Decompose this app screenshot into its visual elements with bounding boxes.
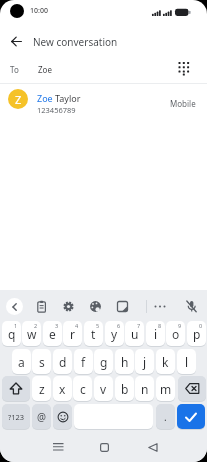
button[interactable]: d [53,349,72,374]
staticText: d [59,354,67,370]
staticText: New conversation [33,35,118,49]
button[interactable]: c [73,376,92,401]
button[interactable]: a [12,349,31,374]
staticText: 6 [117,322,121,329]
button[interactable] [185,300,198,313]
button[interactable] [38,437,78,457]
staticText: f [81,354,86,370]
staticText: 3 [55,322,59,329]
staticText: x [59,381,66,397]
button[interactable]: z [32,376,51,401]
button[interactable] [84,437,124,457]
staticText: m [160,381,172,397]
button[interactable]: l [177,349,196,374]
staticText: p [193,326,201,342]
button[interactable]: ?123 [2,404,30,429]
staticText: 8 [158,322,162,329]
staticText: k [162,354,169,370]
button[interactable] [153,300,166,313]
staticText: Mobile [170,98,196,109]
staticText: 123456789 [37,105,76,115]
button[interactable]: k [156,349,175,374]
button[interactable]: y [105,321,124,346]
button[interactable]: w [22,321,41,346]
staticText: 9 [178,322,182,329]
staticText: u [131,326,139,342]
staticText: s [39,354,45,370]
button[interactable]: v [94,376,113,401]
button[interactable] [178,376,206,401]
button[interactable]: i [146,321,165,346]
staticText: q [8,326,16,342]
staticText: j [143,354,147,370]
button[interactable] [35,300,48,313]
button[interactable]: p [187,321,206,346]
staticText: e [49,326,56,342]
staticText: Z [15,92,22,107]
button[interactable]: . [156,404,175,429]
button[interactable]: h [115,349,134,374]
staticText: h [121,354,129,370]
staticText: l [185,354,189,370]
button[interactable]: t [84,321,103,346]
staticText: Zoe Taylor [37,92,81,104]
staticText: To [10,64,19,75]
staticText: 7 [137,322,141,329]
staticText: 0 [199,322,203,329]
button[interactable] [62,300,75,313]
button[interactable]: n [135,376,154,401]
staticText: v [100,381,107,397]
staticText: 5 [96,322,100,329]
button[interactable]: u [125,321,144,346]
button[interactable]: q [2,321,21,346]
button[interactable]: Z [0,85,207,117]
staticText: 1 [14,322,18,329]
staticText: @ [37,410,46,424]
staticText: i [154,326,158,342]
staticText: Zoe [38,64,52,75]
button[interactable] [177,404,205,429]
button[interactable] [6,298,23,315]
staticText: o [172,326,180,342]
staticText: y [111,326,118,342]
staticText: ?123 [8,412,25,422]
staticText: 2 [34,322,38,329]
staticText: w [27,326,37,342]
button[interactable]: x [53,376,72,401]
staticText: b [121,381,129,397]
button[interactable]: @ [32,404,51,429]
button[interactable] [89,300,102,313]
button[interactable] [2,376,30,401]
button[interactable]: g [94,349,113,374]
button[interactable] [53,404,72,429]
button[interactable]: e [43,321,62,346]
button[interactable]: s [32,349,51,374]
button[interactable] [172,57,194,79]
button[interactable]: o [166,321,185,346]
staticText: c [80,381,86,397]
button[interactable] [116,300,129,313]
button[interactable]: b [115,376,134,401]
staticText: 4 [75,322,79,329]
staticText: 10:00 [30,6,48,16]
staticText: r [70,326,75,342]
staticText: . [164,410,167,424]
staticText: z [39,381,45,397]
button[interactable]: r [63,321,82,346]
button[interactable]: f [74,349,93,374]
staticText: t [91,326,96,342]
staticText: a [18,354,25,370]
button[interactable]: j [135,349,154,374]
button[interactable] [133,437,173,457]
button[interactable] [5,30,27,52]
button[interactable]: m [156,376,175,401]
staticText: g [100,354,108,370]
staticText: n [141,381,149,397]
